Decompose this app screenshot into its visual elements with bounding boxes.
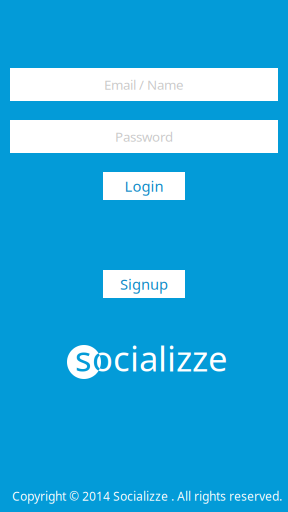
staticText: Signup [120,274,168,294]
button[interactable]: Password [10,120,278,153]
button[interactable]: Login [103,172,185,200]
staticText: Password [115,128,173,145]
staticText: Copyright © 2014 Socializze . All rights… [12,488,282,504]
button[interactable]: Signup [103,270,185,298]
staticText: Login [124,176,163,196]
button[interactable]: Email / Name [10,68,278,101]
staticText: Email / Name [104,76,184,93]
staticText: socializze [75,335,228,381]
staticText: socializze [75,335,228,381]
